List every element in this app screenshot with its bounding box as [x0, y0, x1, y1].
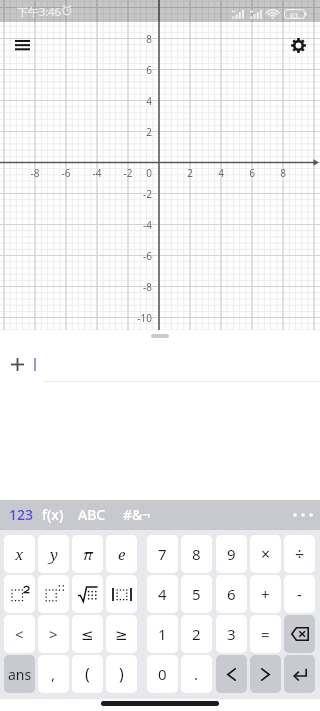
staticText: #&¬ [123, 505, 151, 524]
button[interactable]: More options [290, 507, 316, 523]
button[interactable]: 0 [147, 655, 178, 693]
staticText: -2 [128, 187, 152, 201]
staticText: f(x) [42, 505, 64, 524]
button[interactable]: Square [4, 575, 35, 613]
button[interactable]: Enter [284, 655, 315, 693]
staticText: x [15, 544, 24, 564]
button[interactable]: Square root [72, 575, 103, 613]
button[interactable]: Move right [250, 655, 281, 693]
button[interactable]: 1 [147, 615, 178, 653]
staticText: 0 [158, 664, 167, 684]
staticText: 8 [192, 544, 201, 564]
staticText: - [297, 584, 302, 604]
button[interactable]: ≥ [106, 615, 137, 653]
staticText: ≥ [115, 626, 128, 643]
staticText: 6 [237, 166, 267, 180]
button[interactable]: Settings [280, 27, 316, 63]
staticText: > [49, 624, 58, 644]
staticText: -10 [128, 311, 152, 325]
button[interactable]: 2 [181, 615, 212, 653]
button[interactable]: ( [72, 655, 103, 693]
button[interactable]: × [250, 535, 281, 573]
button[interactable]: = [250, 615, 281, 653]
staticText: 下午3:46 [17, 4, 61, 19]
staticText: . [194, 664, 199, 684]
staticText: 1 [158, 624, 167, 644]
staticText: ) [119, 663, 124, 685]
staticText: -8 [20, 166, 50, 180]
staticText: 3 [227, 624, 236, 644]
staticText: 0 [128, 166, 152, 180]
button[interactable]: ) [106, 655, 137, 693]
button[interactable]: Move left [216, 655, 247, 693]
staticText: 63 [290, 11, 299, 21]
button[interactable]: < [4, 615, 35, 653]
staticText: y [50, 544, 58, 564]
staticText: π [83, 544, 93, 564]
button[interactable]: ABC [78, 501, 106, 528]
staticText: 6 [227, 584, 236, 604]
button[interactable]: f(x) [42, 501, 64, 528]
button[interactable]: 7 [147, 535, 178, 573]
button[interactable]: 8 [181, 535, 212, 573]
staticText: 4 [158, 584, 167, 604]
staticText: -4 [128, 218, 152, 232]
staticText: 2 [128, 125, 152, 139]
staticText: -6 [128, 249, 152, 263]
staticText: ABC [78, 505, 106, 524]
staticText: ( [85, 663, 90, 685]
button[interactable]: 4 [147, 575, 178, 613]
staticText: = [261, 624, 270, 644]
staticText: 8 [268, 166, 298, 180]
button[interactable]: - [284, 575, 315, 613]
button[interactable]: + [250, 575, 281, 613]
button[interactable]: 3 [216, 615, 247, 653]
staticText: e [118, 544, 126, 564]
staticText: 2 [192, 624, 201, 644]
staticText: 2 [175, 166, 205, 180]
staticText: 4 [128, 94, 152, 108]
staticText: 123 [9, 505, 34, 524]
staticText: 7 [158, 544, 167, 564]
staticText: 9 [227, 544, 236, 564]
staticText: 4 [206, 166, 236, 180]
staticText: < [15, 624, 24, 644]
button[interactable]: y [38, 535, 69, 573]
button[interactable]: 6 [216, 575, 247, 613]
staticText: + [261, 584, 270, 604]
button[interactable]: , [38, 655, 69, 693]
staticText: -2 [113, 166, 143, 180]
button[interactable]: 5 [181, 575, 212, 613]
staticText: 6 [128, 63, 152, 77]
button[interactable]: 9 [216, 535, 247, 573]
button[interactable]: π [72, 535, 103, 573]
staticText: ≤ [81, 626, 94, 643]
staticText: , [51, 664, 56, 684]
button[interactable]: Backspace [284, 615, 315, 653]
button[interactable]: Power [38, 575, 69, 613]
button[interactable]: ÷ [284, 535, 315, 573]
button[interactable]: #&¬ [123, 501, 151, 528]
button[interactable]: Menu [4, 29, 40, 61]
staticText: 8 [128, 32, 152, 46]
button[interactable]: . [181, 655, 212, 693]
staticText: -4 [82, 166, 112, 180]
button[interactable]: Absolute value [106, 575, 137, 613]
staticText: -8 [128, 280, 152, 294]
staticText: -6 [51, 166, 81, 180]
button[interactable]: > [38, 615, 69, 653]
button[interactable]: ≤ [72, 615, 103, 653]
button[interactable]: x [4, 535, 35, 573]
button[interactable]: ans [4, 655, 35, 693]
button[interactable]: e [106, 535, 137, 573]
button[interactable]: 123 [9, 501, 34, 528]
staticText: ÷ [295, 543, 305, 565]
staticText: × [261, 543, 271, 565]
staticText: 5 [192, 584, 201, 604]
staticText: ans [8, 665, 32, 684]
button[interactable] [0, 348, 320, 380]
